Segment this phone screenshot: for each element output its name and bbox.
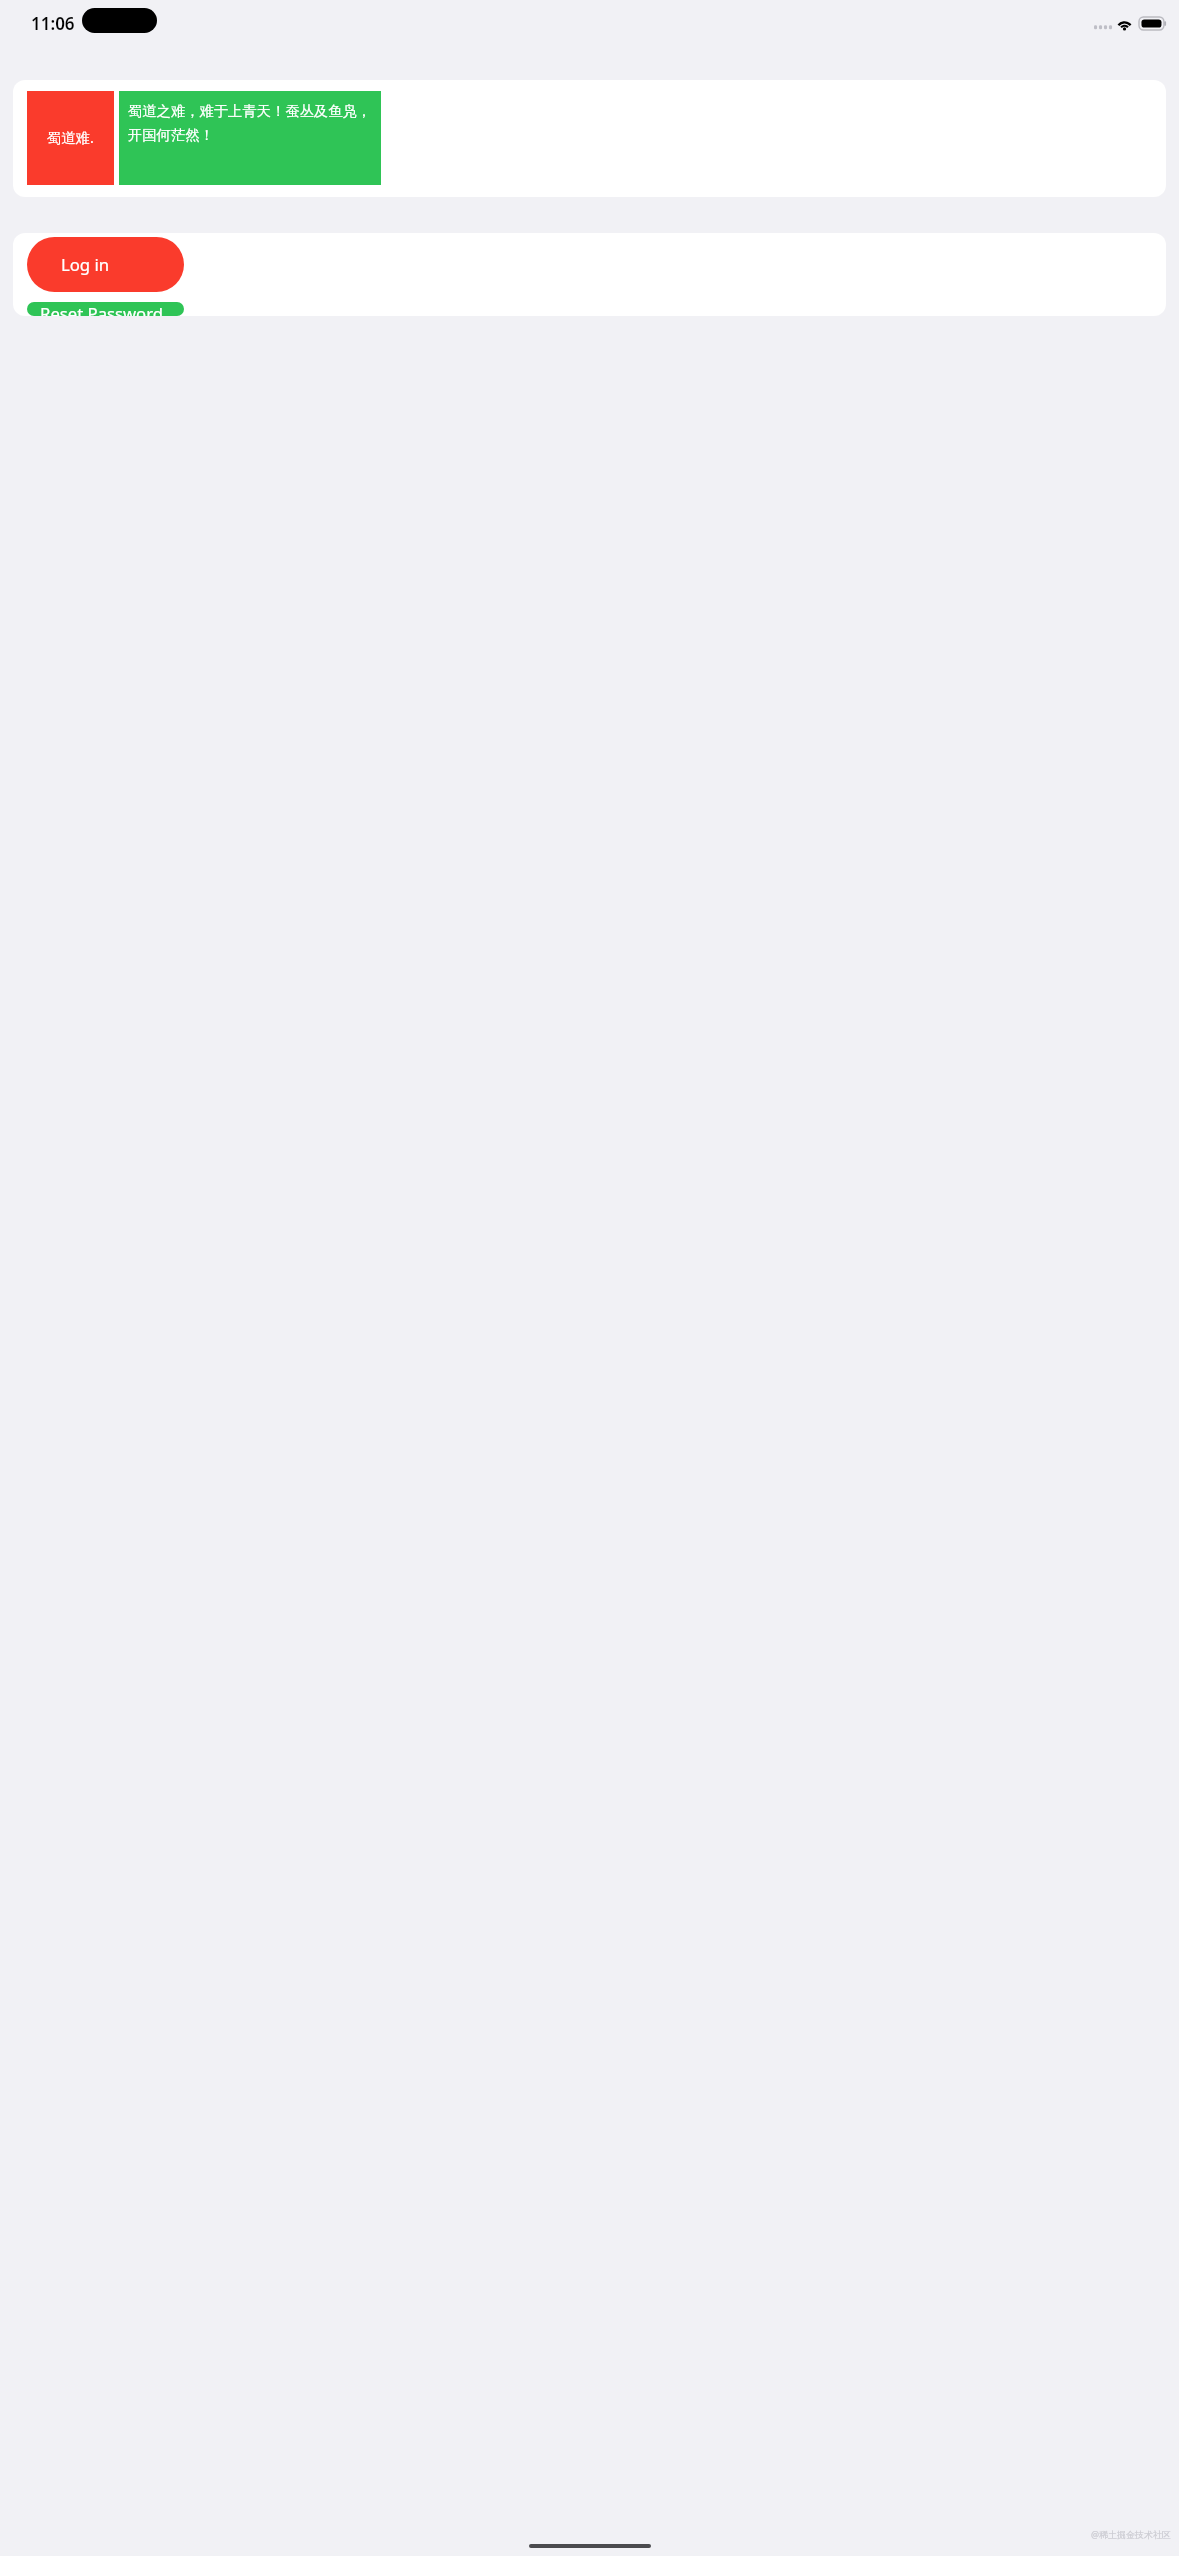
staticText: 11:06 [31,12,75,35]
staticText: 蜀道难. [47,128,94,148]
other: Wi-Fi [1116,18,1133,30]
staticText: @稀土掘金技术社区 [1091,2528,1172,2540]
staticText: Reset Password [40,302,164,316]
staticText: Log in [61,253,110,276]
button[interactable]: Reset Password [27,302,184,316]
staticText: 蜀道之难，难于上青天！蚕丛及鱼凫，开国何茫然！ [128,102,378,144]
other: Battery [1139,17,1167,30]
button[interactable]: Log in [27,237,184,292]
other: Dynamic Island [82,8,157,33]
other: Cellular [1094,18,1110,30]
